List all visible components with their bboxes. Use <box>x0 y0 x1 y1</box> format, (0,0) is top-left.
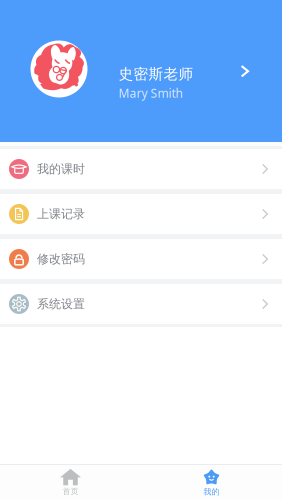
staticText: 修改密码 <box>37 252 85 266</box>
staticText: 首页 <box>62 486 78 496</box>
button[interactable]: 修改密码 <box>0 239 282 279</box>
staticText: 系统设置 <box>37 297 85 311</box>
button[interactable]: 上课记录 <box>0 194 282 234</box>
button[interactable]: 系统设置 <box>0 284 282 324</box>
staticText: 上课记录 <box>37 207 85 221</box>
staticText: 我的 <box>203 487 219 497</box>
staticText: 史密斯老师 <box>118 65 193 83</box>
button[interactable]: 首页 <box>0 465 141 500</box>
button[interactable]: 史密斯老师 <box>0 0 282 142</box>
button[interactable]: 我的课时 <box>0 149 282 189</box>
staticText: Mary Smith <box>118 85 182 101</box>
staticText: 我的课时 <box>37 162 85 176</box>
button[interactable]: 我的 <box>141 465 282 500</box>
